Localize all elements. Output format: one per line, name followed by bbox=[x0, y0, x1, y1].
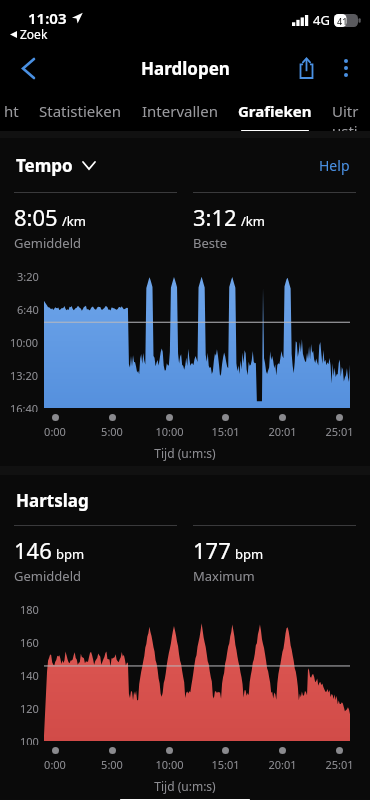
button[interactable]: More options bbox=[326, 48, 366, 88]
button[interactable]: Back bbox=[8, 48, 48, 88]
staticText: 16:40 bbox=[10, 401, 39, 412]
staticText: 146 bbox=[14, 535, 52, 565]
staticText: 4G bbox=[313, 11, 330, 29]
staticText: 13:20 bbox=[10, 368, 39, 383]
staticText: bpm bbox=[235, 545, 264, 563]
staticText: Intervallen bbox=[142, 101, 218, 121]
button[interactable]: Uitrusting bbox=[328, 90, 364, 131]
staticText: 15:01 bbox=[211, 757, 240, 772]
staticText: 3:12 bbox=[193, 202, 237, 232]
staticText: 140 bbox=[20, 668, 39, 683]
staticText: Help bbox=[319, 156, 350, 175]
staticText: 15:01 bbox=[211, 424, 240, 439]
staticText: Uitrusting bbox=[332, 101, 360, 131]
staticText: 11:03 bbox=[28, 8, 67, 28]
staticText: 5:00 bbox=[101, 424, 123, 439]
staticText: 180 bbox=[20, 602, 39, 617]
staticText: 10:00 bbox=[10, 335, 39, 350]
staticText: Maximum bbox=[193, 567, 255, 585]
staticText: Gemiddeld bbox=[14, 567, 81, 585]
staticText: 177 bbox=[193, 535, 231, 565]
staticText: /km bbox=[62, 212, 86, 230]
button[interactable]: Hartslag bbox=[16, 489, 89, 512]
button[interactable]: ht bbox=[0, 90, 23, 121]
staticText: 6:40 bbox=[17, 302, 39, 317]
staticText: 10:00 bbox=[155, 757, 184, 772]
button[interactable]: Tempo bbox=[16, 154, 95, 177]
staticText: Statistieken bbox=[39, 101, 122, 121]
staticText: 3:20 bbox=[17, 269, 39, 284]
staticText: /km bbox=[241, 212, 265, 230]
staticText: Tempo bbox=[16, 154, 73, 177]
staticText: 8:05 bbox=[14, 202, 58, 232]
staticText: 120 bbox=[20, 701, 39, 716]
button[interactable]: Help bbox=[315, 152, 354, 179]
staticText: bpm bbox=[56, 545, 85, 563]
staticText: Tijd (u:m:s) bbox=[0, 778, 370, 794]
staticText: 20:01 bbox=[268, 424, 297, 439]
staticText: 25:01 bbox=[325, 424, 354, 439]
staticText: 0:00 bbox=[44, 757, 66, 772]
button[interactable]: Intervallen bbox=[138, 90, 222, 121]
staticText: Beste bbox=[193, 234, 228, 252]
staticText: 20:01 bbox=[268, 757, 297, 772]
button[interactable]: Share bbox=[286, 48, 326, 88]
staticText: Hardlopen bbox=[141, 57, 230, 80]
staticText: ht bbox=[4, 101, 19, 121]
button[interactable]: Statistieken bbox=[35, 90, 126, 121]
staticText: 100 bbox=[20, 734, 39, 745]
staticText: Hartslag bbox=[16, 489, 89, 512]
staticText: 10:00 bbox=[155, 424, 184, 439]
staticText: 41 bbox=[337, 15, 348, 27]
staticText: 160 bbox=[20, 635, 39, 650]
staticText: 0:00 bbox=[44, 424, 66, 439]
staticText: Grafieken bbox=[238, 101, 312, 121]
staticText: 5:00 bbox=[101, 757, 123, 772]
button[interactable]: Grafieken bbox=[234, 90, 316, 131]
staticText: Tijd (u:m:s) bbox=[0, 445, 370, 461]
staticText: 25:01 bbox=[325, 757, 354, 772]
staticText: Gemiddeld bbox=[14, 234, 81, 252]
staticText: Zoek bbox=[20, 26, 48, 42]
